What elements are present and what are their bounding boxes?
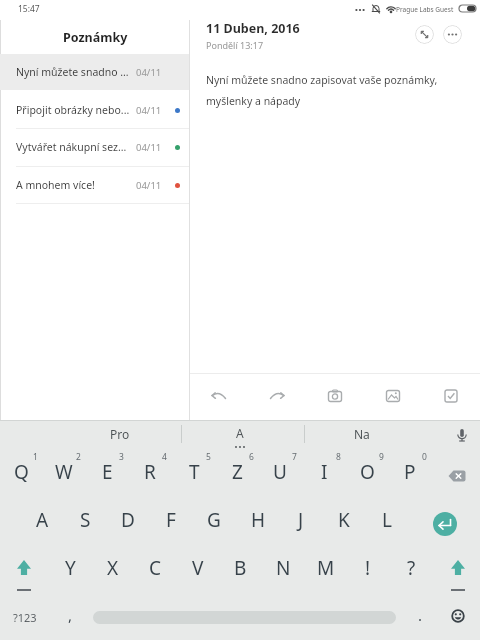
button[interactable]: A (140, 418, 340, 448)
button[interactable]: N (264, 545, 302, 591)
staticText: 15:47 (18, 3, 40, 15)
button[interactable]: F (152, 497, 190, 543)
staticText: 8 (336, 451, 341, 463)
button[interactable]: A (23, 497, 61, 543)
staticText: W (55, 459, 73, 485)
staticText: A mnohem více! (16, 178, 95, 192)
staticText: , (68, 605, 73, 625)
button[interactable]: Připojit obrázky nebo... (0, 92, 189, 128)
staticText: J (298, 507, 304, 533)
button[interactable]: Pro (20, 419, 220, 449)
button[interactable]: O (348, 449, 386, 495)
button[interactable] (415, 25, 434, 44)
button[interactable] (321, 382, 349, 410)
button[interactable]: ?123 (3, 602, 47, 632)
button[interactable]: Vytvářet nákupní sezn... (0, 129, 189, 165)
button[interactable] (379, 382, 407, 410)
staticText: E (102, 459, 113, 485)
staticText: 7 (292, 451, 297, 463)
button[interactable]: Q (2, 449, 40, 495)
staticText: Nyní můžete snadno z... (16, 65, 130, 79)
staticText: Na (354, 426, 370, 442)
staticText: Z (232, 459, 243, 485)
button[interactable]: D (109, 497, 147, 543)
staticText: H (251, 507, 266, 533)
button[interactable] (433, 512, 457, 536)
button[interactable]: H (239, 497, 277, 543)
button[interactable]: V (179, 545, 217, 591)
button[interactable]: E (88, 449, 126, 495)
button[interactable]: B (221, 545, 259, 591)
staticText: 5 (206, 451, 211, 463)
staticText: V (192, 555, 204, 581)
staticText: 04/11 (136, 141, 162, 154)
button[interactable] (437, 382, 465, 410)
button[interactable]: . (405, 600, 435, 630)
button[interactable]: K (325, 497, 363, 543)
staticText: S (80, 507, 91, 533)
button[interactable]: Na (262, 419, 462, 449)
button[interactable] (443, 464, 471, 488)
staticText: C (149, 555, 162, 581)
button[interactable] (452, 426, 472, 446)
staticText: D (121, 507, 135, 533)
button[interactable]: Z (218, 449, 256, 495)
staticText: 11 Duben, 2016 (206, 20, 300, 37)
button[interactable]: L (368, 497, 406, 543)
staticText: ! (365, 555, 371, 581)
staticText: Prague Labs Guest (396, 5, 454, 14)
button[interactable] (12, 556, 36, 580)
staticText: 2 (76, 451, 81, 463)
button[interactable] (205, 382, 233, 410)
button[interactable]: I (305, 449, 343, 495)
staticText: 0 (422, 451, 427, 463)
button[interactable] (446, 556, 470, 580)
button[interactable]: Nyní můžete snadno z... (0, 54, 189, 90)
staticText: 04/11 (136, 66, 162, 79)
button[interactable]: ? (392, 545, 430, 591)
staticText: F (166, 507, 176, 533)
button[interactable] (448, 606, 468, 626)
button[interactable]: C (136, 545, 174, 591)
button[interactable]: M (307, 545, 345, 591)
button[interactable]: ! (349, 545, 387, 591)
staticText: I (321, 459, 328, 485)
staticText: 9 (379, 451, 384, 463)
button[interactable] (0, 54, 189, 90)
button[interactable]: W (45, 449, 83, 495)
staticText: A (36, 507, 49, 533)
button[interactable]: R (131, 449, 169, 495)
staticText: 04/11 (136, 179, 162, 192)
staticText: Připojit obrázky nebo... (16, 103, 130, 117)
button[interactable] (443, 25, 462, 44)
staticText: T (189, 459, 200, 485)
staticText: Pro (110, 426, 130, 442)
button[interactable]: , (55, 600, 85, 630)
staticText: Q (14, 459, 29, 485)
button[interactable]: G (195, 497, 233, 543)
button[interactable]: J (282, 497, 320, 543)
staticText: 4 (162, 451, 167, 463)
button[interactable] (263, 382, 291, 410)
button[interactable]: A mnohem více! (0, 167, 189, 203)
button[interactable]: Y (51, 545, 89, 591)
staticText: L (382, 507, 392, 533)
staticText: U (273, 459, 287, 485)
button[interactable]: X (94, 545, 132, 591)
button[interactable]: P (391, 449, 429, 495)
staticText: B (234, 555, 247, 581)
staticText: N (276, 555, 291, 581)
staticText: myšlenky a nápady (206, 94, 301, 108)
staticText: Nyní můžete snadno zapisovat vaše poznám… (206, 73, 438, 87)
button[interactable]: U (261, 449, 299, 495)
staticText: ? (407, 555, 416, 581)
staticText: X (107, 555, 119, 581)
button[interactable]: T (175, 449, 213, 495)
staticText: 04/11 (136, 104, 162, 117)
staticText: P (404, 459, 416, 485)
staticText: Pondělí 13:17 (206, 39, 264, 51)
staticText: M (317, 555, 335, 581)
button[interactable]: S (66, 497, 104, 543)
staticText: Y (65, 555, 76, 581)
